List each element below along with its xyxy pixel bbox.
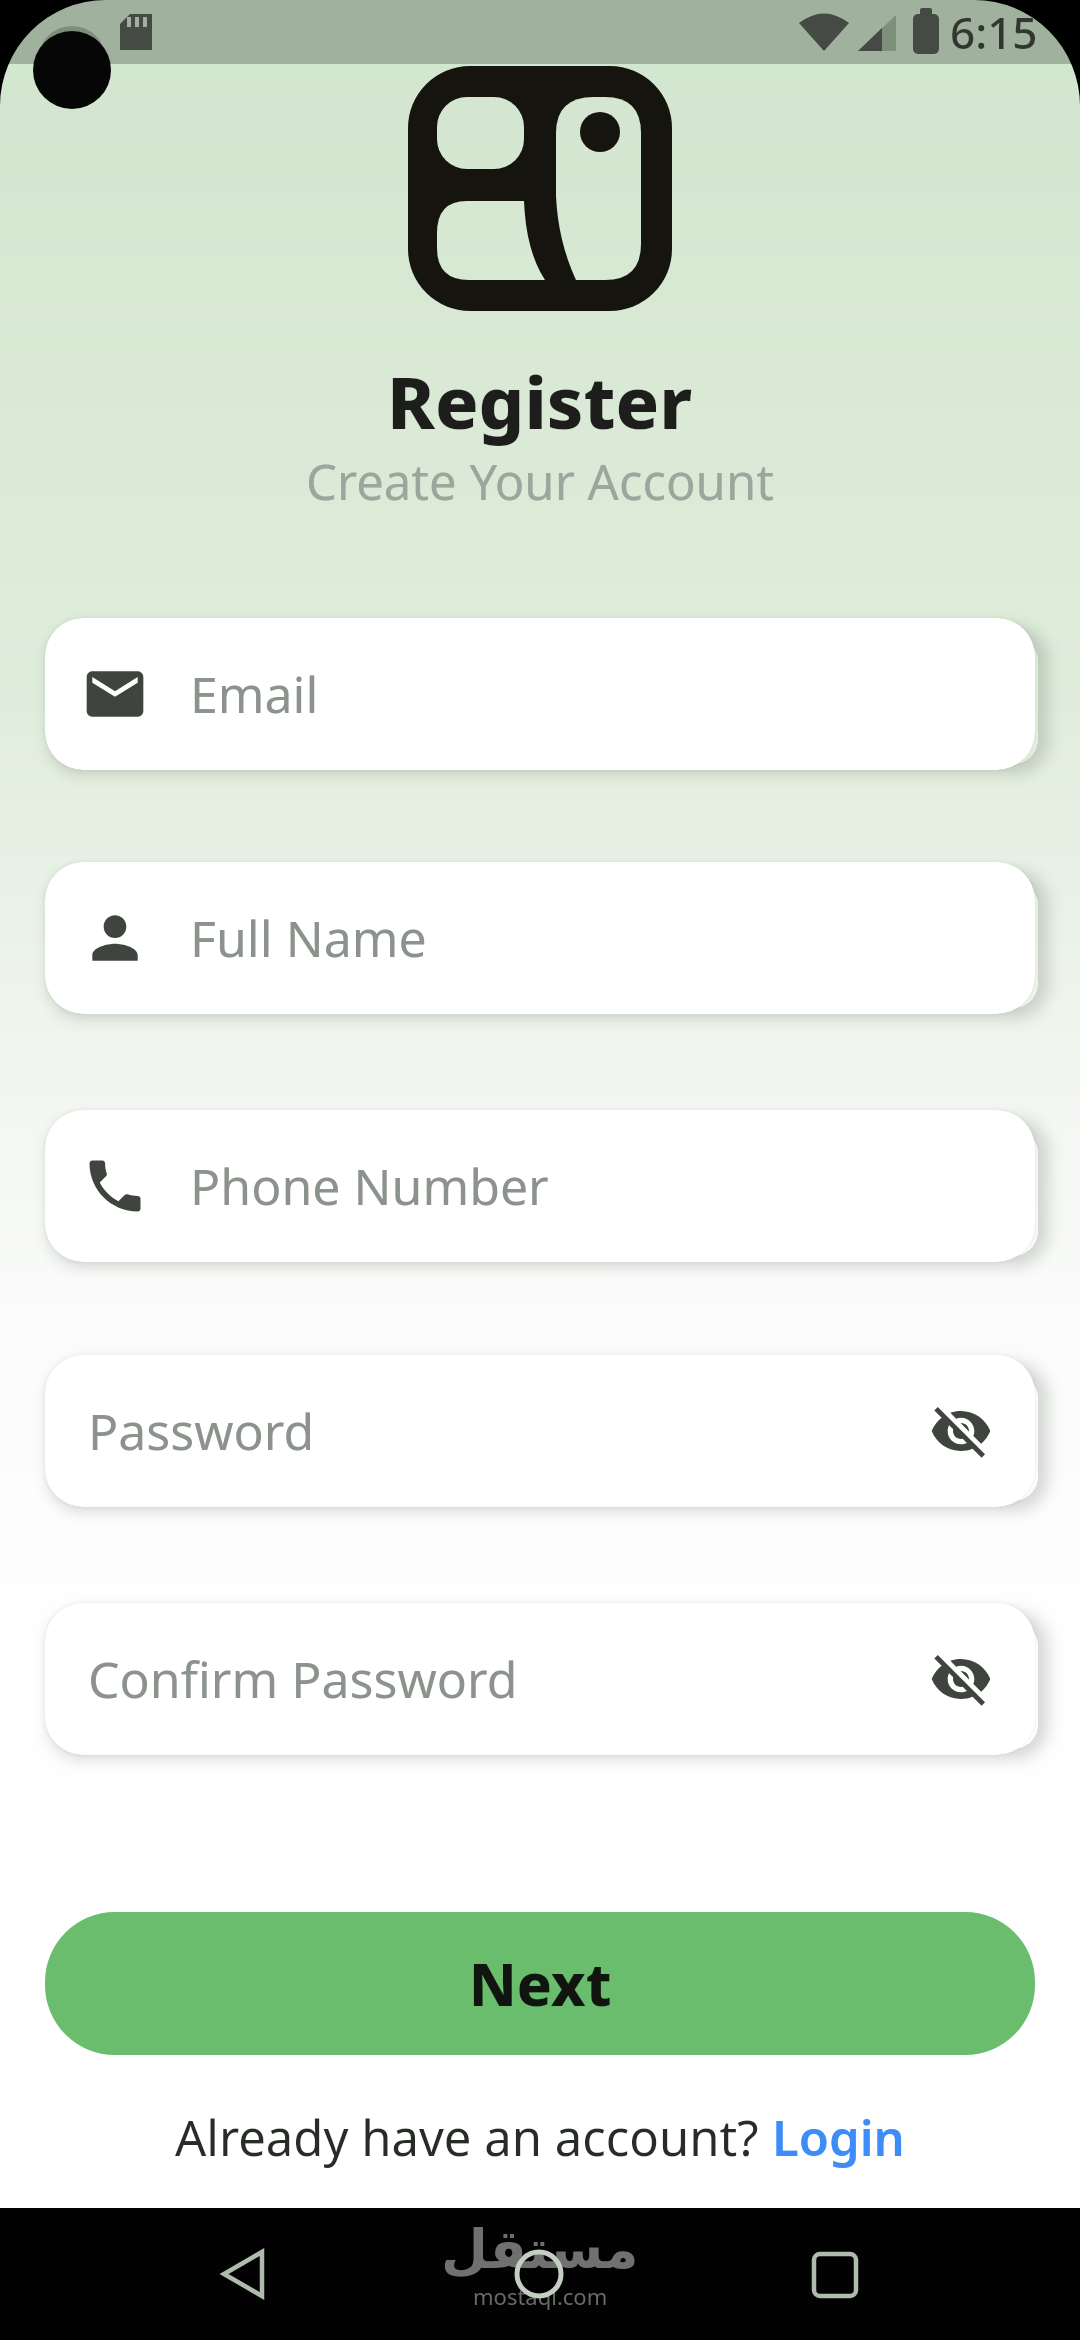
staticText: Phone Number [190, 1152, 549, 1220]
button[interactable]: Email [45, 618, 1035, 770]
staticText: Password [88, 1397, 315, 1465]
staticText: Create Your Account [306, 448, 774, 512]
button[interactable]: Next [45, 1912, 1035, 2055]
button[interactable] [360, 2208, 720, 2340]
staticText: Email [190, 660, 319, 728]
staticText: مستقل [441, 2218, 639, 2281]
button[interactable]: Confirm Password [45, 1603, 1035, 1755]
button[interactable]: Login [772, 2104, 905, 2171]
button[interactable]: Full Name [45, 862, 1035, 1014]
button[interactable] [0, 2208, 360, 2340]
staticText: Confirm Password [88, 1645, 518, 1713]
staticText: Next [469, 1944, 612, 2023]
staticText: Full Name [190, 904, 427, 972]
staticText: Already have an account? [175, 2104, 772, 2171]
button[interactable] [720, 2208, 1080, 2340]
button[interactable]: Phone Number [45, 1110, 1035, 1262]
staticText: 6:15 [950, 2, 1038, 62]
button[interactable]: Password [45, 1355, 1035, 1507]
staticText: mostaql.com [473, 2281, 608, 2311]
staticText: Register [387, 352, 693, 448]
